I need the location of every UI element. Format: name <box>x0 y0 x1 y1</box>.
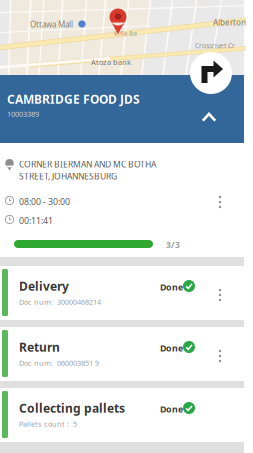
staticText: 3/3 <box>166 239 180 251</box>
staticText: Alberton <box>213 17 246 28</box>
staticText: Done <box>160 281 183 293</box>
staticText: Rifle Rd <box>114 29 137 37</box>
button[interactable]: Task options <box>210 343 230 369</box>
staticText: Done <box>160 342 183 354</box>
button[interactable]: Navigate <box>190 52 232 94</box>
button[interactable]: Collapse details <box>194 103 224 131</box>
button[interactable]: More options <box>208 188 232 216</box>
staticText: Doc num: 060003851 9 <box>19 358 99 368</box>
staticText: 10003389 <box>7 109 39 119</box>
staticText: 08:00 - 30:00 <box>19 195 70 207</box>
staticText: Collecting pallets <box>19 400 125 416</box>
staticText: Delivery <box>19 278 69 294</box>
staticText: Done <box>160 403 183 415</box>
staticText: Atoza bank <box>91 57 131 67</box>
button[interactable]: Delivery <box>0 266 244 320</box>
staticText: Crossrivet Cr <box>195 41 235 50</box>
staticText: STREET, JOHANNESBURG <box>19 170 117 182</box>
staticText: Pallets count : 5 <box>19 419 77 429</box>
staticText: CAMBRIDGE FOOD JDS <box>7 91 140 107</box>
button[interactable]: Task options <box>210 282 230 308</box>
staticText: 00:11:41 <box>19 214 53 226</box>
staticText: CORNER BIERMAN AND MC BOTHA <box>19 158 156 170</box>
staticText: Doc num: 30000468214 <box>19 297 101 307</box>
staticText: Ottawa Mall <box>30 19 73 30</box>
staticText: Return <box>19 339 60 355</box>
button[interactable]: Collecting pallets <box>0 388 244 442</box>
button[interactable]: Return <box>0 327 244 381</box>
